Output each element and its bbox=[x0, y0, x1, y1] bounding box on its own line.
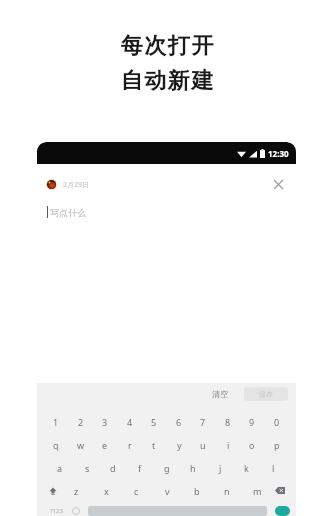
button[interactable]: 2 bbox=[72, 415, 90, 428]
staticText: 4 bbox=[127, 416, 133, 428]
button[interactable]: s bbox=[78, 461, 96, 474]
button[interactable]: j bbox=[211, 461, 229, 474]
button[interactable]: 关闭 bbox=[269, 175, 287, 193]
button[interactable]: 保存 bbox=[244, 387, 288, 401]
staticText: e bbox=[102, 439, 108, 451]
button[interactable]: c bbox=[127, 484, 145, 497]
button[interactable]: h bbox=[184, 461, 202, 474]
staticText: r bbox=[128, 439, 132, 451]
staticText: j bbox=[219, 462, 222, 474]
staticText: 保存 bbox=[259, 390, 273, 399]
button[interactable]: v bbox=[158, 484, 176, 497]
staticText: 自动新建 bbox=[120, 67, 214, 95]
staticText: 6 bbox=[176, 416, 182, 428]
button[interactable]: 0 bbox=[268, 415, 286, 428]
button[interactable]: i bbox=[219, 438, 237, 451]
staticText: 8 bbox=[225, 416, 231, 428]
staticText: a bbox=[57, 462, 63, 474]
button[interactable]: 8 bbox=[219, 415, 237, 428]
staticText: 7 bbox=[200, 416, 206, 428]
button[interactable]: w bbox=[72, 438, 90, 451]
button[interactable]: 6 bbox=[170, 415, 188, 428]
staticText: n bbox=[224, 485, 230, 497]
button[interactable]: k bbox=[237, 461, 255, 474]
staticText: 每次打开 bbox=[120, 32, 214, 60]
button[interactable]: e bbox=[96, 438, 114, 451]
button[interactable]: Emoji bbox=[69, 506, 82, 516]
staticText: t bbox=[152, 439, 156, 451]
button[interactable]: l bbox=[264, 461, 282, 474]
staticText: u bbox=[200, 439, 206, 451]
button[interactable]: 9 bbox=[243, 415, 261, 428]
staticText: h bbox=[190, 462, 196, 474]
button[interactable]: d bbox=[104, 461, 122, 474]
staticText: 写点什么 bbox=[50, 207, 86, 218]
button[interactable]: ?123 bbox=[43, 506, 69, 516]
button[interactable]: p bbox=[268, 438, 286, 451]
staticText: b bbox=[194, 485, 200, 497]
button[interactable]: 2月29日 bbox=[46, 179, 90, 190]
staticText: f bbox=[138, 462, 142, 474]
staticText: o bbox=[249, 439, 255, 451]
staticText: z bbox=[74, 485, 79, 497]
button[interactable]: t bbox=[145, 438, 163, 451]
button[interactable]: z bbox=[67, 484, 85, 497]
staticText: 2 bbox=[78, 416, 84, 428]
staticText: p bbox=[274, 439, 280, 451]
button[interactable]: u bbox=[194, 438, 212, 451]
staticText: l bbox=[272, 462, 275, 474]
staticText: x bbox=[104, 485, 109, 497]
button[interactable]: o bbox=[243, 438, 261, 451]
button[interactable]: 4 bbox=[121, 415, 139, 428]
staticText: w bbox=[77, 439, 85, 451]
staticText: 0 bbox=[274, 416, 280, 428]
button[interactable]: b bbox=[188, 484, 206, 497]
staticText: 1 bbox=[53, 416, 59, 428]
staticText: 5 bbox=[151, 416, 157, 428]
button[interactable]: 7 bbox=[194, 415, 212, 428]
staticText: 清空 bbox=[212, 389, 228, 399]
staticText: c bbox=[134, 485, 139, 497]
staticText: d bbox=[110, 462, 116, 474]
button[interactable]: Backspace bbox=[269, 484, 291, 497]
staticText: 3 bbox=[102, 416, 108, 428]
button[interactable]: Shift bbox=[42, 484, 64, 497]
staticText: g bbox=[164, 462, 170, 474]
button[interactable]: 3 bbox=[96, 415, 114, 428]
button[interactable]: 清空 bbox=[206, 386, 234, 402]
staticText: v bbox=[165, 485, 170, 497]
button[interactable]: 1 bbox=[47, 415, 65, 428]
staticText: q bbox=[53, 439, 59, 451]
staticText: s bbox=[85, 462, 90, 474]
staticText: ?123 bbox=[50, 507, 63, 515]
staticText: 12:30 bbox=[268, 148, 289, 159]
staticText: 2月29日 bbox=[63, 180, 90, 190]
staticText: m bbox=[253, 485, 262, 497]
button[interactable]: f bbox=[131, 461, 149, 474]
button[interactable]: x bbox=[97, 484, 115, 497]
button[interactable]: g bbox=[158, 461, 176, 474]
staticText: i bbox=[227, 439, 230, 451]
button[interactable]: Enter bbox=[275, 506, 290, 516]
button[interactable]: 写点什么 bbox=[47, 206, 86, 218]
button[interactable]: m bbox=[248, 484, 266, 497]
button[interactable]: 5 bbox=[145, 415, 163, 428]
button[interactable]: r bbox=[121, 438, 139, 451]
button[interactable]: n bbox=[218, 484, 236, 497]
staticText: 9 bbox=[249, 416, 255, 428]
staticText: k bbox=[244, 462, 249, 474]
staticText: y bbox=[177, 439, 182, 451]
button[interactable]: q bbox=[47, 438, 65, 451]
button[interactable]: y bbox=[170, 438, 188, 451]
button[interactable]: a bbox=[51, 461, 69, 474]
